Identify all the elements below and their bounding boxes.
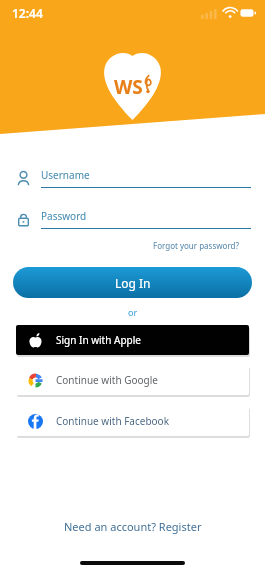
button[interactable]: Continue with Facebook <box>16 406 249 436</box>
staticText: Need an account? Register <box>64 519 202 534</box>
staticText: Forgot your password? <box>153 240 239 251</box>
staticText: Password <box>41 209 87 223</box>
staticText: or <box>128 306 138 318</box>
button[interactable]: Need an account? Register <box>58 516 208 537</box>
staticText: 12:44 <box>12 5 43 21</box>
staticText: Username <box>41 168 90 182</box>
staticText: Continue with Facebook <box>56 414 169 428</box>
button[interactable]: Forgot your password? <box>149 238 243 253</box>
button[interactable]: Sign In with Apple <box>16 325 249 355</box>
button[interactable]: Continue with Google <box>16 365 249 395</box>
staticText: Log In <box>115 275 151 291</box>
staticText: Continue with Google <box>56 373 158 387</box>
button[interactable]: Username <box>17 168 251 188</box>
button[interactable]: Log In <box>13 267 252 298</box>
staticText: Sign In with Apple <box>56 333 141 347</box>
button[interactable]: Password <box>17 209 251 229</box>
staticText: WS <box>114 74 143 100</box>
